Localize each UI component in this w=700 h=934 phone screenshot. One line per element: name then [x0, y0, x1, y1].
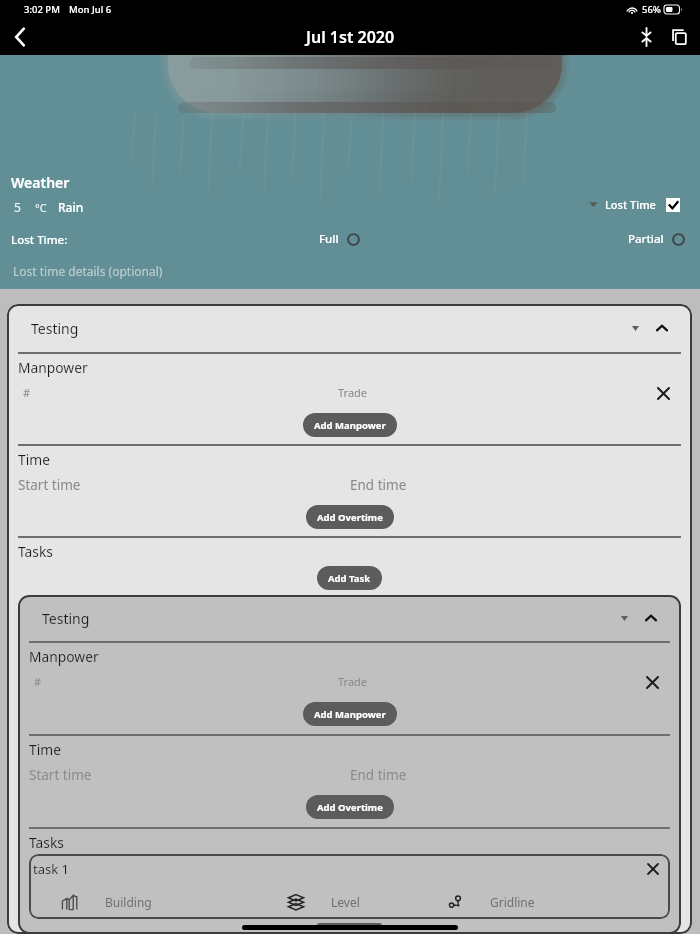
- staticText: Add Task: [328, 923, 371, 928]
- button[interactable]: Add Manpower: [303, 413, 397, 437]
- button[interactable]: Back: [4, 21, 36, 53]
- staticText: Building: [105, 894, 152, 910]
- staticText: 5: [14, 199, 21, 215]
- staticText: Lost Time:: [11, 232, 68, 248]
- button[interactable]: Start time: [18, 476, 81, 494]
- button[interactable]: Options: [611, 605, 637, 631]
- staticText: °C: [35, 200, 47, 215]
- staticText: Tasks: [29, 833, 64, 852]
- staticText: End time: [350, 766, 407, 784]
- staticText: Trade: [338, 385, 368, 400]
- button[interactable]: Lost time details (optional): [13, 263, 163, 279]
- button[interactable]: Building: [60, 892, 152, 912]
- staticText: task 1: [33, 860, 69, 878]
- staticText: Manpower: [29, 647, 99, 666]
- button[interactable]: Remove manpower: [650, 380, 676, 406]
- button[interactable]: Lost Time: [589, 197, 680, 212]
- staticText: Testing: [31, 319, 79, 338]
- button[interactable]: Collapse all: [631, 22, 661, 52]
- button[interactable]: End time: [350, 766, 407, 784]
- button[interactable]: Partial: [628, 231, 685, 247]
- staticText: #: [23, 385, 31, 400]
- staticText: Weather: [11, 173, 70, 192]
- button[interactable]: Add Overtime: [306, 795, 394, 819]
- button[interactable]: Full: [319, 231, 360, 247]
- staticText: Full: [319, 231, 339, 247]
- staticText: Tasks: [18, 542, 53, 561]
- staticText: Jul 1st 2020: [306, 26, 395, 48]
- button[interactable]: Collapse: [638, 605, 664, 631]
- button[interactable]: Gridline: [447, 893, 535, 910]
- button[interactable]: Collapse: [649, 315, 675, 341]
- button[interactable]: task 1: [29, 854, 670, 919]
- staticText: Add Overtime: [317, 511, 383, 524]
- staticText: Add Task: [328, 572, 371, 585]
- button[interactable]: Testing: [18, 595, 681, 641]
- button[interactable]: Add Overtime: [306, 505, 394, 529]
- button[interactable]: Options: [622, 315, 648, 341]
- staticText: #: [34, 674, 42, 689]
- staticText: 56%: [642, 3, 661, 16]
- staticText: Lost Time: [605, 197, 656, 212]
- staticText: Time: [29, 740, 61, 759]
- staticText: Add Overtime: [317, 801, 383, 814]
- staticText: Gridline: [490, 894, 535, 910]
- staticText: Rain: [58, 199, 84, 215]
- button[interactable]: Add Task: [317, 923, 382, 928]
- staticText: Level: [331, 894, 360, 910]
- staticText: Partial: [628, 231, 664, 247]
- staticText: Trade: [338, 674, 368, 689]
- button[interactable]: Remove manpower: [639, 669, 665, 695]
- other: Lost Time checked: [666, 198, 680, 212]
- staticText: Testing: [42, 609, 90, 628]
- button[interactable]: Copy: [664, 22, 694, 52]
- staticText: Mon Jul 6: [69, 3, 112, 16]
- button[interactable]: Add Task: [317, 566, 382, 590]
- button[interactable]: Start time: [29, 766, 92, 784]
- button[interactable]: Level: [286, 892, 360, 912]
- button[interactable]: Add Manpower: [303, 702, 397, 726]
- staticText: End time: [350, 476, 407, 494]
- staticText: Add Manpower: [314, 708, 386, 721]
- staticText: Manpower: [18, 358, 88, 377]
- button[interactable]: Testing: [7, 304, 692, 352]
- button[interactable]: End time: [350, 476, 407, 494]
- staticText: 3:02 PM: [24, 3, 60, 16]
- staticText: Time: [18, 450, 50, 469]
- button[interactable]: Remove task: [642, 858, 664, 880]
- staticText: Add Manpower: [314, 419, 386, 432]
